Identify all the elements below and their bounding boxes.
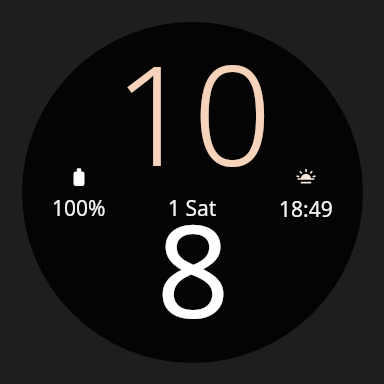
button[interactable]: 1 Sat <box>168 194 217 223</box>
staticText: 18:49 <box>279 195 333 224</box>
staticText: 100% <box>52 194 106 223</box>
button[interactable]: Battery 100 percent <box>52 168 106 223</box>
button[interactable]: 10 <box>22 22 363 363</box>
staticText: 1 Sat <box>168 194 217 223</box>
button[interactable]: Sunset time 18:49 <box>279 167 333 224</box>
staticText: 8 <box>156 181 230 355</box>
staticText: 10 <box>114 22 272 206</box>
